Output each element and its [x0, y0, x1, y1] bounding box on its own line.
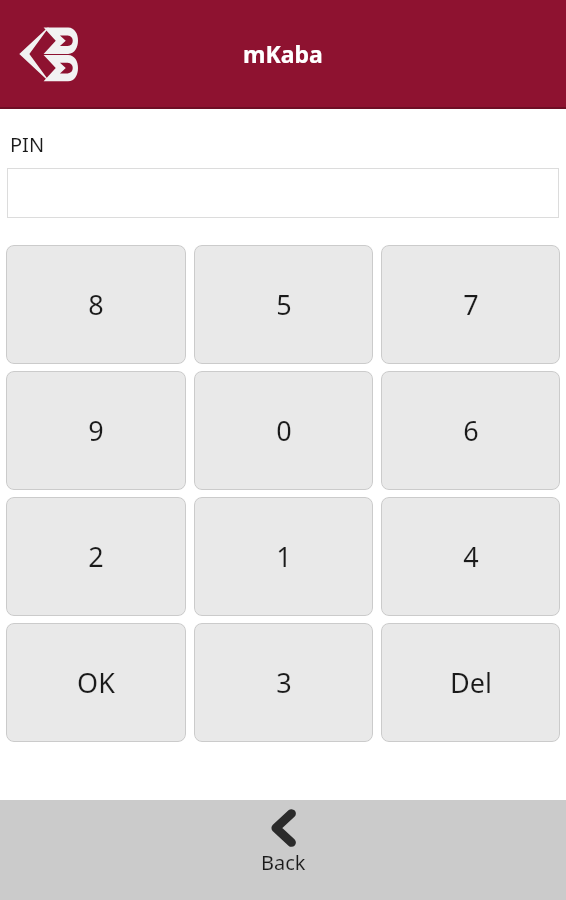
button[interactable]: 4: [381, 497, 560, 616]
staticText: Del: [450, 664, 492, 701]
button[interactable]: 3: [194, 623, 373, 742]
button[interactable]: 7: [381, 245, 560, 364]
button[interactable]: 2: [6, 497, 186, 616]
button[interactable]: 5: [194, 245, 373, 364]
other: Back: [267, 810, 301, 846]
staticText: 2: [88, 538, 104, 575]
staticText: 7: [463, 286, 479, 323]
button[interactable]: 6: [381, 371, 560, 490]
staticText: 6: [463, 412, 479, 449]
staticText: 5: [276, 286, 292, 323]
staticText: 1: [276, 538, 292, 575]
button[interactable]: 0: [194, 371, 373, 490]
button[interactable]: OK: [6, 623, 186, 742]
staticText: PIN: [10, 131, 45, 158]
staticText: mKaba: [243, 38, 323, 69]
other: Kaba logo: [18, 24, 82, 84]
staticText: OK: [77, 664, 115, 701]
staticText: Back: [261, 849, 306, 876]
button[interactable]: 1: [194, 497, 373, 616]
button[interactable]: Del: [381, 623, 560, 742]
button[interactable]: 8: [6, 245, 186, 364]
staticText: 4: [463, 538, 479, 575]
staticText: 8: [88, 286, 104, 323]
staticText: 3: [276, 664, 292, 701]
button[interactable]: Back: [0, 800, 566, 900]
button[interactable]: PIN entry field: [7, 168, 559, 218]
button[interactable]: 9: [6, 371, 186, 490]
staticText: 0: [276, 412, 292, 449]
staticText: 9: [88, 412, 104, 449]
